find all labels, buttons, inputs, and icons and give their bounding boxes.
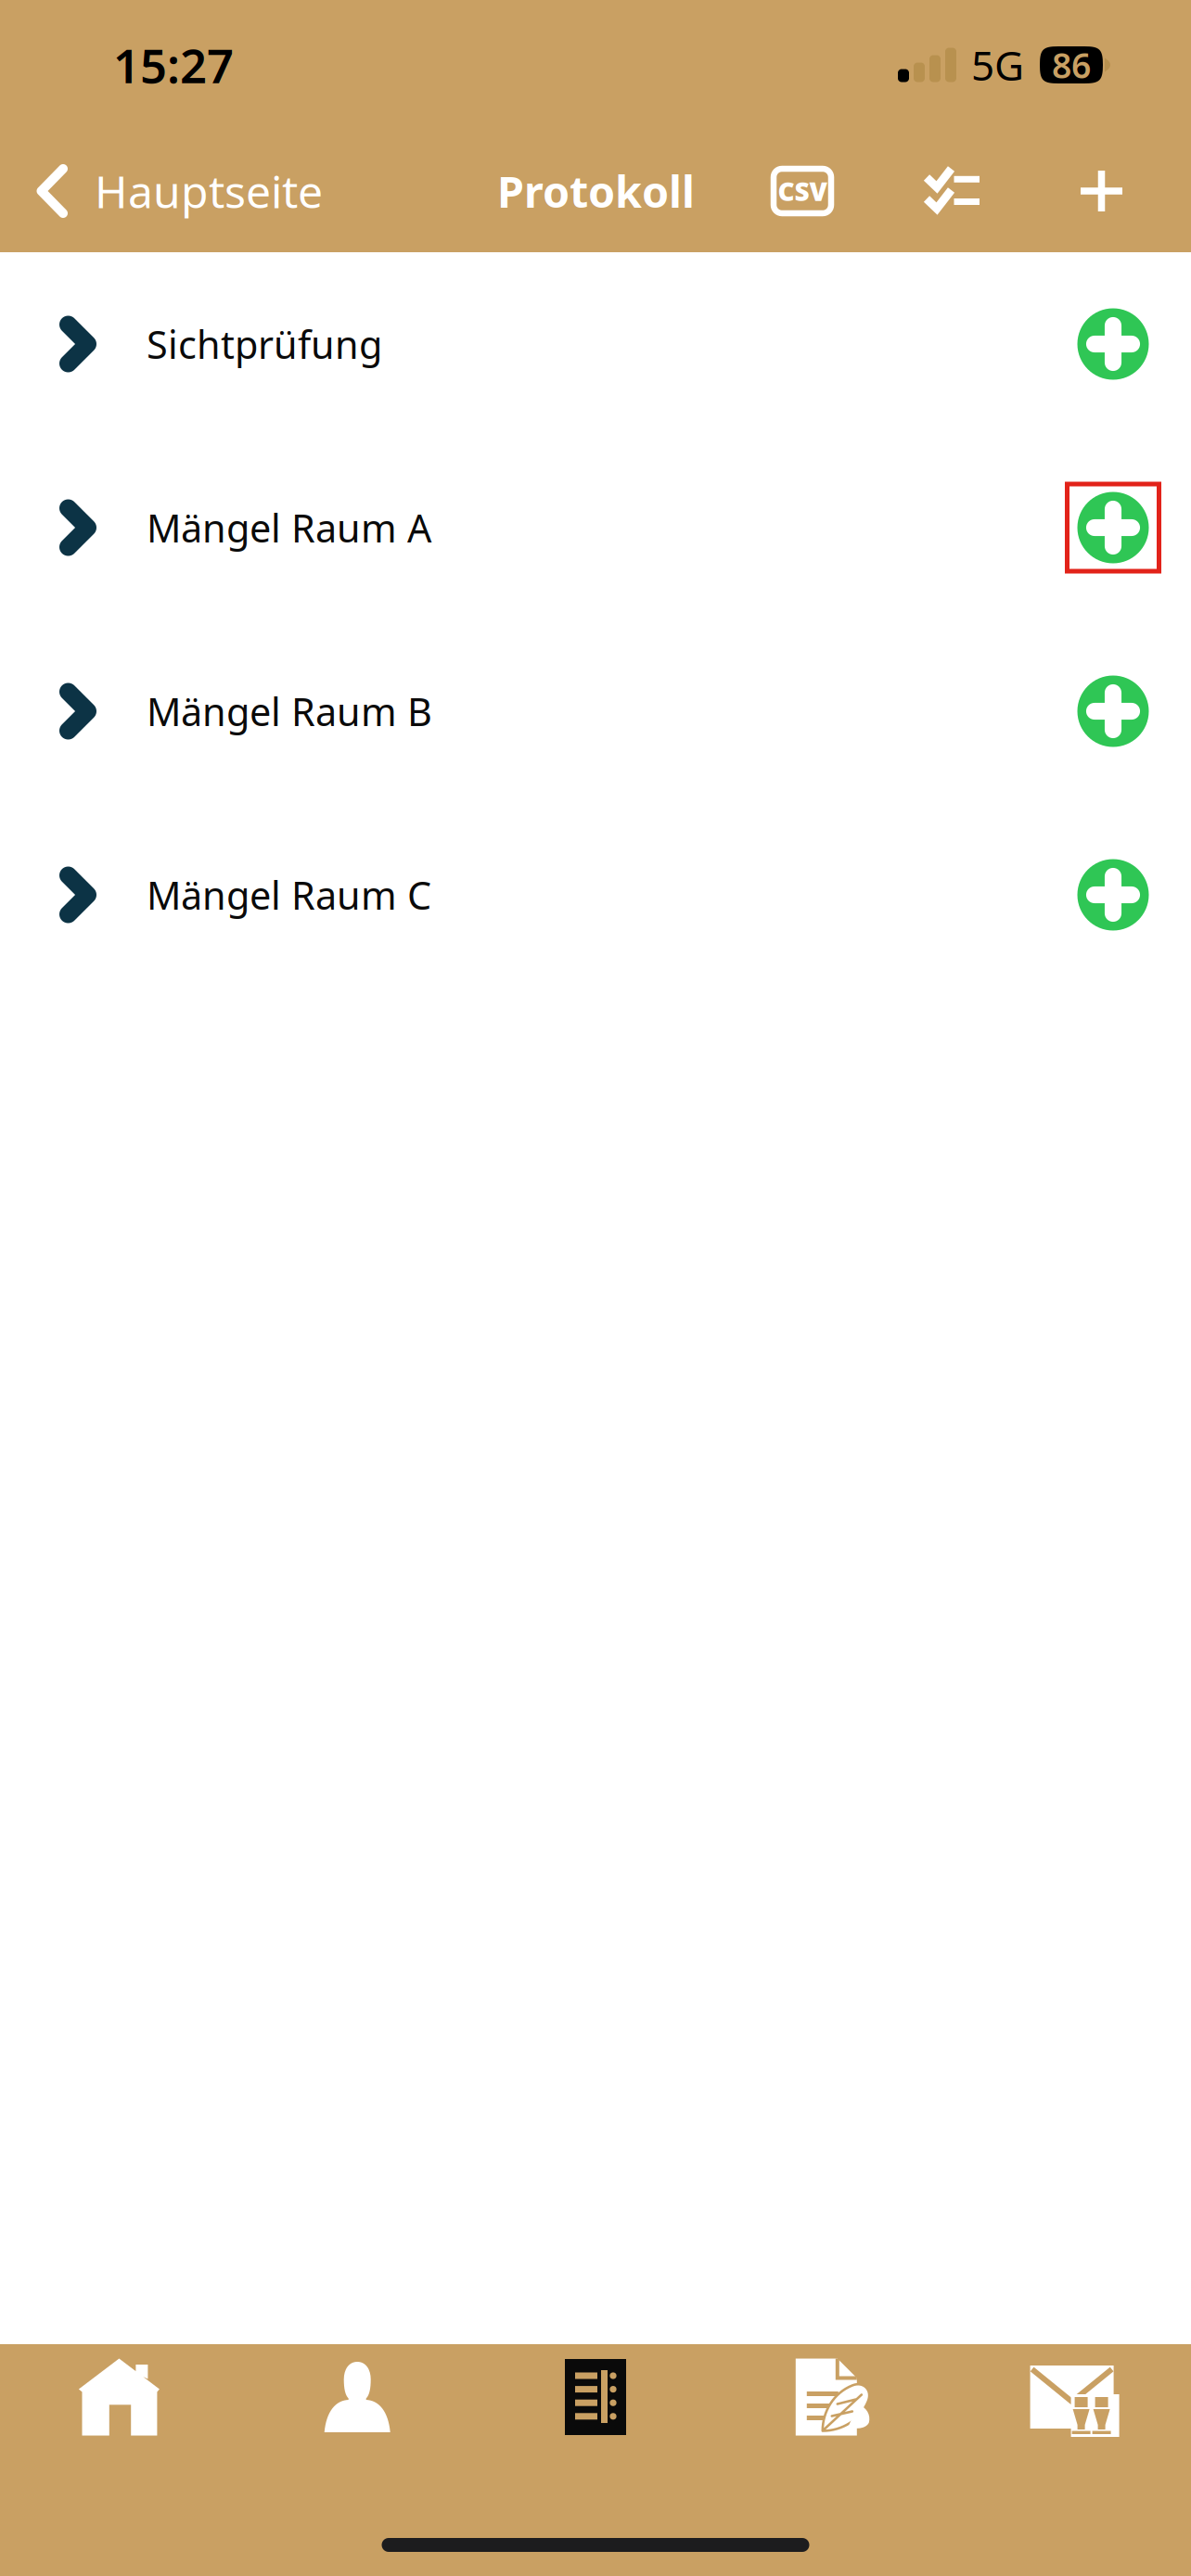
button[interactable]: Add entry (1065, 436, 1161, 619)
staticText: 86 (1052, 42, 1091, 88)
button[interactable]: Sichtprüfung (0, 252, 1065, 436)
button[interactable]: Checklist (909, 130, 993, 252)
staticText: Mängel Raum A (147, 502, 431, 553)
staticText: 15:27 (113, 34, 234, 96)
button[interactable]: Hauptseite (0, 130, 345, 252)
button[interactable]: Mängel Raum B (0, 619, 1065, 803)
staticText: CSV (778, 174, 827, 208)
button[interactable]: Profile (238, 2350, 476, 2444)
staticText: Sichtprüfung (147, 319, 382, 370)
button[interactable]: Add entry (1065, 252, 1161, 436)
staticText: Hauptseite (95, 161, 323, 221)
staticText: Protokoll (497, 162, 695, 220)
button[interactable]: Add entry (1065, 803, 1161, 987)
button[interactable]: Messages (953, 2350, 1191, 2444)
button[interactable]: Add entry (1065, 619, 1161, 803)
button[interactable]: Mängel Raum A (0, 436, 1065, 619)
staticText: Mängel Raum C (147, 869, 431, 920)
button[interactable]: Mängel Raum C (0, 803, 1065, 987)
staticText: 5G (971, 38, 1024, 92)
button[interactable]: Protocol (476, 2350, 715, 2444)
button[interactable]: Reports (715, 2350, 953, 2444)
button[interactable]: Export CSV (760, 130, 845, 252)
button[interactable]: Add (1067, 130, 1136, 252)
staticText: Mängel Raum B (147, 686, 432, 737)
button[interactable]: Home (0, 2350, 238, 2444)
